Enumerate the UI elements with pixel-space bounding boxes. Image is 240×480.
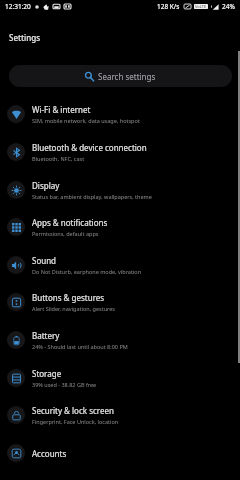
staticText: 12:31:20	[5, 2, 31, 11]
button[interactable]: Security & lock screen	[0, 396, 240, 434]
staticText: Bluetooth & device connection	[32, 142, 147, 153]
staticText: Fingerprint, Face Unlock, location	[32, 418, 119, 425]
staticText: Search settings	[98, 71, 156, 82]
staticText: 128 K/s	[157, 2, 180, 11]
button[interactable]: Apps & notifications	[0, 208, 240, 246]
button[interactable]: Buttons & gestures	[0, 283, 240, 321]
staticText: Storage	[32, 368, 62, 379]
staticText: Status bar, ambient display, wallpapers,…	[32, 193, 152, 200]
button[interactable]: Battery	[0, 321, 240, 359]
button[interactable]: Wi-Fi & internet	[0, 95, 240, 133]
staticText: Apps & notifications	[32, 217, 108, 228]
staticText: 24%	[222, 2, 235, 11]
button[interactable]: Sound	[0, 246, 240, 284]
staticText: Sound	[32, 255, 57, 266]
button[interactable]: Search settings	[9, 65, 232, 87]
staticText: Do Not Disturb, earphone mode, vibration	[32, 268, 142, 275]
staticText: Permissions, default apps	[32, 230, 99, 237]
button[interactable]: Bluetooth & device connection	[0, 133, 240, 171]
staticText: Accounts	[32, 448, 67, 459]
staticText: Buttons & gestures	[32, 292, 105, 303]
button[interactable]: Display	[0, 171, 240, 209]
staticText: 24% - Should last until about 8:00 PM	[32, 343, 128, 350]
staticText: Wi-Fi & internet	[32, 104, 91, 115]
staticText: SIM, mobile network, data usage, hotspot	[32, 117, 140, 124]
staticText: Settings	[9, 32, 41, 43]
staticText: 39% used - 38.82 GB free	[32, 381, 97, 388]
staticText: Bluetooth, NFC, cast	[32, 155, 85, 162]
button[interactable]: Accounts	[0, 434, 240, 472]
staticText: Battery	[32, 330, 60, 341]
staticText: Display	[32, 180, 60, 191]
button[interactable]: Storage	[0, 359, 240, 397]
staticText: Security & lock screen	[32, 405, 114, 416]
staticText: Alert Slider, navigation, gestures	[32, 305, 115, 312]
staticText: VoLTE	[195, 4, 207, 9]
